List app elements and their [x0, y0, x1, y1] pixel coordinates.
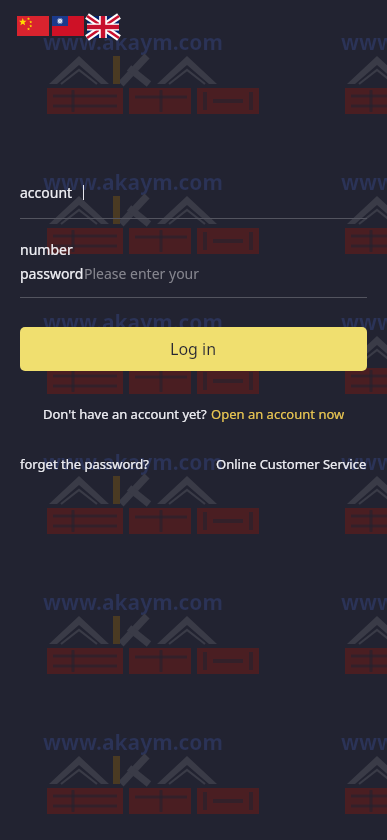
button[interactable]: Simplified Chinese	[17, 16, 49, 36]
staticText: forget the password?	[20, 455, 149, 473]
button[interactable]: Open an account now	[211, 405, 345, 423]
staticText: account	[20, 183, 73, 202]
staticText: Online Customer Service	[216, 455, 367, 473]
staticText: Open an account now	[211, 405, 345, 423]
staticText: Please enter your password	[84, 264, 256, 283]
staticText: Log in	[170, 338, 217, 360]
staticText: password	[20, 264, 84, 283]
button[interactable]: English	[87, 16, 119, 38]
staticText: number	[20, 240, 73, 259]
staticText: Don't have an account yet?	[43, 405, 211, 423]
button[interactable]: account	[20, 180, 367, 204]
button[interactable]: number	[20, 238, 367, 286]
button[interactable]: Traditional Chinese	[52, 16, 84, 36]
button[interactable]: forget the password?	[20, 455, 149, 473]
button[interactable]: Online Customer Service	[216, 455, 367, 473]
button[interactable]: Log in	[20, 327, 367, 371]
